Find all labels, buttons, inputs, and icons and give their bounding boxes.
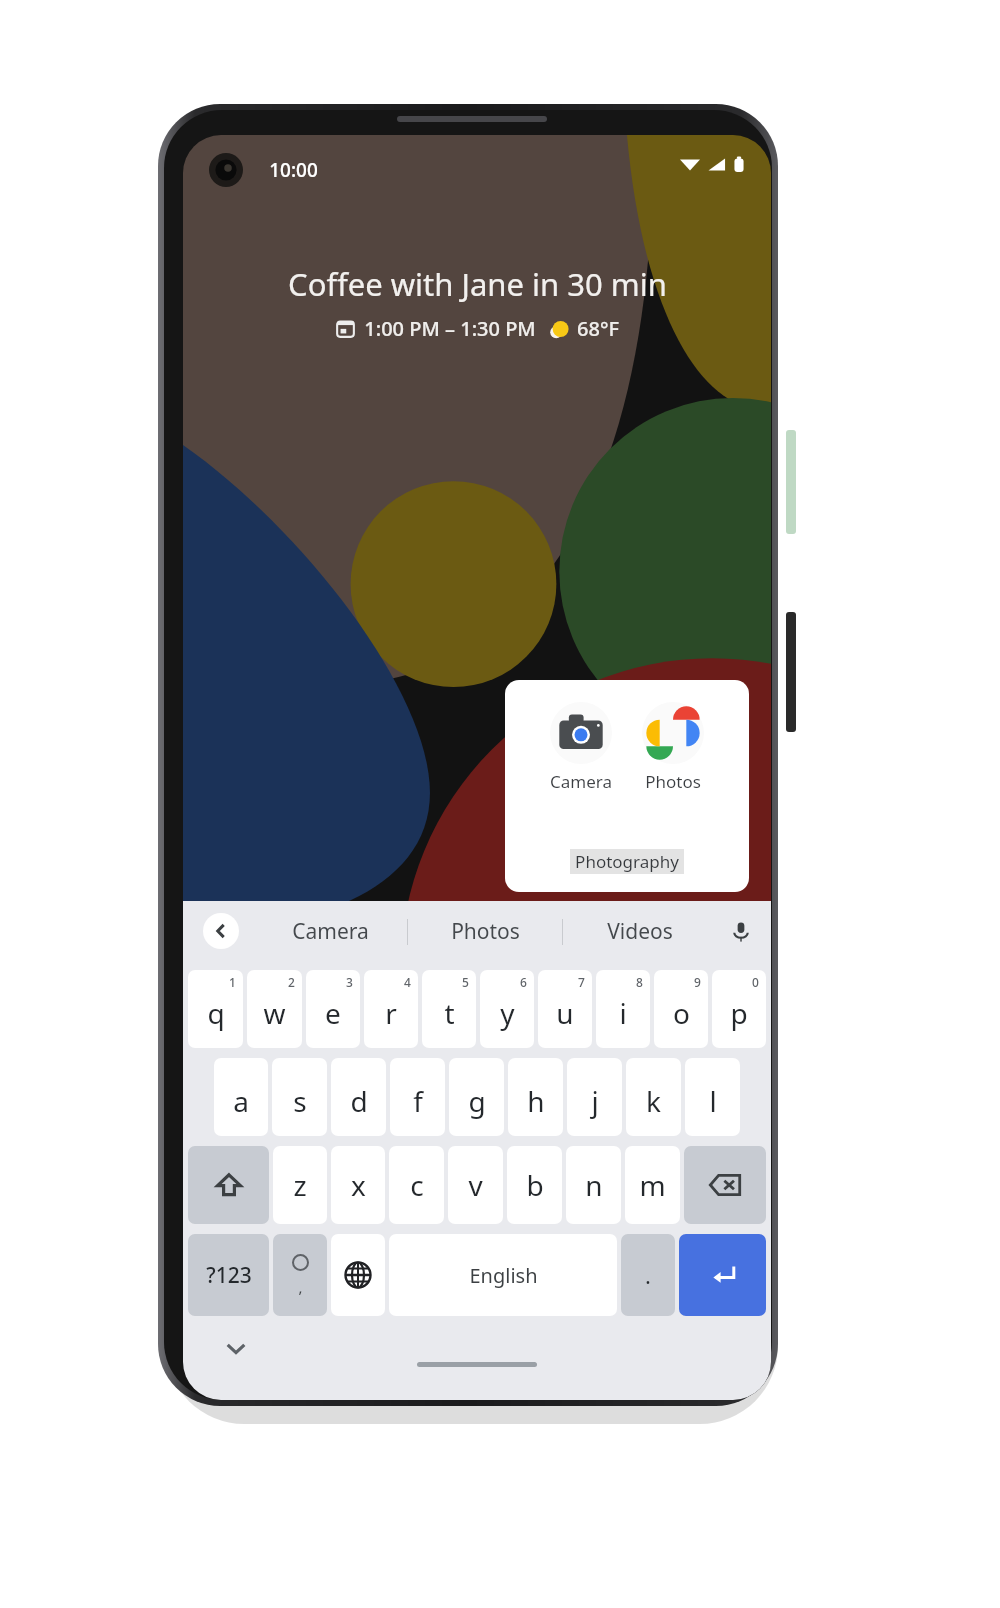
- button[interactable]: c: [389, 1146, 444, 1224]
- staticText: Photos: [451, 917, 520, 946]
- button[interactable]: Hide keyboard: [223, 1335, 249, 1361]
- staticText: d: [350, 1082, 368, 1120]
- staticText: u: [556, 994, 574, 1032]
- button[interactable]: d: [331, 1058, 386, 1136]
- staticText: 3: [346, 974, 353, 990]
- button[interactable]: 5: [422, 970, 476, 1048]
- button[interactable]: Back: [203, 913, 239, 949]
- staticText: 9: [694, 974, 701, 990]
- staticText: 5: [462, 974, 469, 990]
- staticText: .: [645, 1260, 651, 1290]
- staticText: t: [444, 994, 455, 1032]
- staticText: w: [263, 994, 286, 1032]
- staticText: s: [293, 1082, 307, 1120]
- button[interactable]: Emoji: [273, 1234, 327, 1316]
- staticText: z: [293, 1166, 307, 1204]
- staticText: 7: [578, 974, 585, 990]
- staticText: Photos: [645, 770, 701, 793]
- button[interactable]: 6: [480, 970, 534, 1048]
- button[interactable]: ?123: [188, 1234, 269, 1316]
- staticText: 6: [520, 974, 527, 990]
- staticText: a: [233, 1082, 249, 1120]
- staticText: 68°F: [577, 315, 619, 342]
- staticText: j: [591, 1082, 599, 1120]
- staticText: 10:00: [269, 157, 318, 183]
- staticText: 1:00 PM – 1:30 PM: [364, 315, 536, 342]
- button[interactable]: Photos: [642, 702, 704, 793]
- staticText: q: [207, 994, 225, 1032]
- staticText: e: [325, 994, 341, 1032]
- button[interactable]: Change language: [331, 1234, 385, 1316]
- button[interactable]: Voice input: [729, 920, 753, 944]
- staticText: k: [646, 1082, 661, 1120]
- other: Photos: [642, 702, 704, 764]
- staticText: g: [468, 1082, 486, 1120]
- button[interactable]: a: [214, 1058, 268, 1136]
- staticText: v: [468, 1166, 483, 1204]
- staticText: p: [730, 994, 748, 1032]
- staticText: 8: [636, 974, 643, 990]
- staticText: Videos: [607, 917, 673, 946]
- staticText: Coffee with Jane in 30 min: [288, 263, 667, 305]
- staticText: f: [413, 1082, 423, 1120]
- button[interactable]: Enter: [679, 1234, 766, 1316]
- button[interactable]: m: [625, 1146, 680, 1224]
- button[interactable]: 8: [596, 970, 650, 1048]
- button[interactable]: 7: [538, 970, 592, 1048]
- staticText: 2: [288, 974, 295, 990]
- button[interactable]: 2: [247, 970, 302, 1048]
- button[interactable]: Camera: [505, 680, 749, 892]
- staticText: i: [619, 994, 627, 1032]
- button[interactable]: Backspace: [684, 1146, 766, 1224]
- button[interactable]: j: [567, 1058, 622, 1136]
- button[interactable]: h: [508, 1058, 563, 1136]
- button[interactable]: 9: [654, 970, 708, 1048]
- staticText: n: [585, 1166, 603, 1204]
- button[interactable]: b: [507, 1146, 562, 1224]
- staticText: b: [526, 1166, 544, 1204]
- staticText: h: [527, 1082, 545, 1120]
- button[interactable]: 3: [306, 970, 360, 1048]
- button[interactable]: 0: [712, 970, 766, 1048]
- button[interactable]: Shift: [188, 1146, 269, 1224]
- staticText: ,: [298, 1277, 303, 1297]
- staticText: l: [709, 1082, 717, 1120]
- staticText: Camera: [292, 917, 369, 946]
- button[interactable]: Photos: [408, 917, 562, 946]
- button[interactable]: l: [685, 1058, 740, 1136]
- staticText: Photography: [575, 850, 679, 873]
- button[interactable]: Camera: [550, 702, 612, 793]
- button[interactable]: 1: [188, 970, 243, 1048]
- button[interactable]: Camera: [253, 917, 407, 946]
- button[interactable]: k: [626, 1058, 681, 1136]
- staticText: 1: [229, 974, 236, 990]
- staticText: English: [469, 1262, 538, 1289]
- button[interactable]: .: [621, 1234, 675, 1316]
- staticText: x: [351, 1166, 366, 1204]
- button[interactable]: f: [390, 1058, 445, 1136]
- button[interactable]: English: [389, 1234, 617, 1316]
- button[interactable]: x: [331, 1146, 385, 1224]
- staticText: o: [673, 994, 690, 1032]
- staticText: m: [639, 1166, 666, 1204]
- button[interactable]: Coffee with Jane in 30 min: [183, 263, 771, 342]
- button[interactable]: g: [449, 1058, 504, 1136]
- staticText: ?123: [206, 1261, 252, 1290]
- button[interactable]: z: [273, 1146, 327, 1224]
- staticText: Camera: [550, 770, 612, 793]
- button[interactable]: 4: [364, 970, 418, 1048]
- staticText: c: [410, 1166, 424, 1204]
- staticText: r: [385, 994, 397, 1032]
- button[interactable]: s: [272, 1058, 327, 1136]
- staticText: y: [500, 994, 515, 1032]
- button[interactable]: v: [448, 1146, 503, 1224]
- staticText: 4: [404, 974, 411, 990]
- button[interactable]: n: [566, 1146, 621, 1224]
- other: Camera: [550, 702, 612, 764]
- button[interactable]: Videos: [563, 917, 717, 946]
- staticText: 0: [752, 974, 759, 990]
